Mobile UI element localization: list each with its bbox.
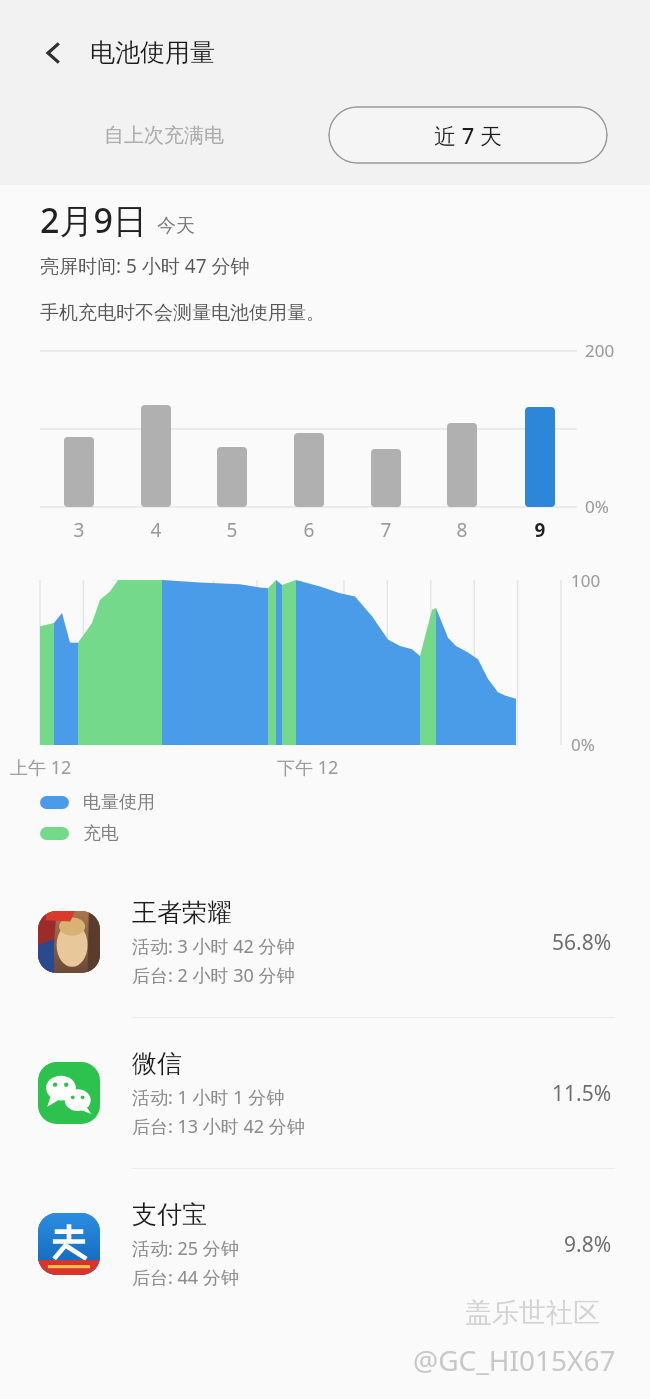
staticText: 0%	[585, 495, 609, 518]
staticText: 上午 12	[10, 755, 72, 780]
staticText: 微信	[132, 1048, 182, 1079]
staticText: 4	[144, 517, 168, 543]
staticText: 7	[374, 517, 398, 543]
staticText: 活动: 25 分钟	[132, 1236, 239, 1261]
staticText: 电池使用量	[90, 37, 215, 68]
staticText: 盖乐世社区	[465, 1296, 600, 1330]
staticText: @GC_HI015X67	[413, 1341, 616, 1379]
staticText: 下午 12	[277, 755, 339, 780]
staticText: 活动: 3 小时 42 分钟	[132, 934, 295, 959]
staticText: 充电	[83, 822, 119, 845]
button[interactable]: 近 7 天	[328, 106, 608, 164]
staticText: 自上次充满电	[104, 123, 224, 148]
button[interactable]: 支付宝	[0, 1169, 650, 1319]
button[interactable]: 王者荣耀	[0, 867, 650, 1017]
staticText: 电量使用	[83, 791, 155, 814]
staticText: 3	[67, 517, 91, 543]
staticText: 王者荣耀	[132, 897, 232, 928]
button[interactable]: Back	[22, 21, 86, 85]
button[interactable]: 微信	[0, 1018, 650, 1168]
staticText: 0%	[571, 733, 595, 756]
staticText: 近 7 天	[434, 120, 503, 150]
staticText: 亮屏时间: 5 小时 47 分钟	[40, 253, 250, 279]
staticText: 9.8%	[564, 1230, 612, 1259]
staticText: 5	[220, 517, 244, 543]
staticText: 活动: 1 小时 1 分钟	[132, 1085, 285, 1110]
staticText: 手机充电时不会测量电池使用量。	[40, 301, 325, 325]
staticText: 6	[297, 517, 321, 543]
staticText: 56.8%	[552, 928, 612, 957]
staticText: 200	[585, 339, 615, 362]
staticText: 2月9日	[40, 197, 147, 243]
staticText: 100	[571, 569, 601, 592]
staticText: 今天	[157, 214, 195, 238]
staticText: 后台: 13 小时 42 分钟	[132, 1114, 305, 1139]
staticText: 后台: 44 分钟	[132, 1265, 239, 1290]
staticText: 8	[450, 517, 474, 543]
button[interactable]: 自上次充满电	[0, 105, 328, 165]
staticText: 支付宝	[132, 1199, 207, 1230]
staticText: 11.5%	[552, 1079, 612, 1108]
staticText: 后台: 2 小时 30 分钟	[132, 963, 295, 988]
staticText: 9	[528, 517, 552, 543]
